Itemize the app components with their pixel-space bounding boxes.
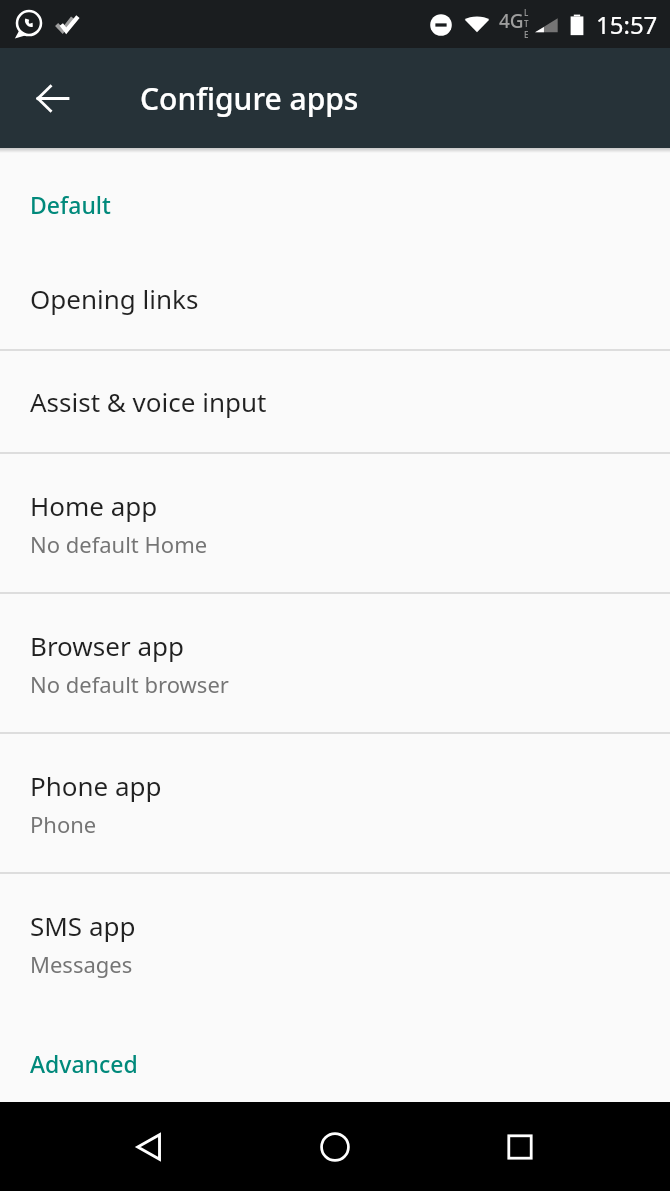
staticText: 15:57 (596, 8, 658, 41)
button[interactable]: Browser app (0, 594, 670, 732)
staticText: Opening links (30, 281, 199, 316)
staticText: Home app (30, 488, 158, 523)
staticText: No default Home (30, 529, 208, 559)
button[interactable]: Opening links (0, 248, 670, 349)
staticText: Browser app (30, 628, 184, 663)
staticText: Configure apps (140, 78, 359, 119)
button[interactable]: Back (20, 66, 84, 130)
staticText: T (524, 18, 529, 29)
button[interactable]: Assist & voice input (0, 351, 670, 452)
staticText: SMS app (30, 908, 136, 943)
button[interactable]: Phone app (0, 734, 670, 872)
staticText: Advanced (30, 1048, 138, 1079)
staticText: Assist & voice input (30, 384, 267, 419)
staticText: Phone app (30, 768, 162, 803)
button[interactable]: SMS app (0, 874, 670, 1012)
button[interactable]: Recent apps (478, 1105, 562, 1189)
staticText: No default browser (30, 669, 229, 699)
staticText: L (524, 7, 529, 18)
staticText: Default (30, 189, 111, 220)
staticText: 4G (499, 8, 524, 34)
button[interactable]: Back (108, 1105, 192, 1189)
button[interactable]: Home app (0, 454, 670, 592)
staticText: Phone (30, 809, 97, 839)
staticText: E (524, 29, 529, 40)
staticText: Messages (30, 949, 133, 979)
button[interactable]: Home (293, 1105, 377, 1189)
